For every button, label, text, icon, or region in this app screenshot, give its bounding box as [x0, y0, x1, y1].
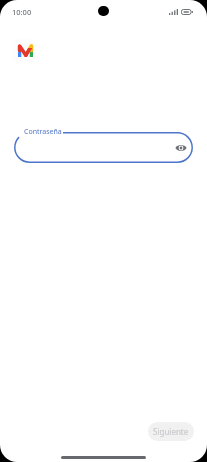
staticText: 10:00 — [12, 7, 32, 17]
button[interactable]: Mostrar contraseña — [14, 132, 193, 163]
button[interactable]: Mostrar contraseña — [172, 139, 190, 157]
staticText: Siguiente — [153, 426, 189, 437]
button[interactable]: Siguiente — [148, 422, 194, 441]
staticText: Contraseña — [24, 127, 62, 137]
